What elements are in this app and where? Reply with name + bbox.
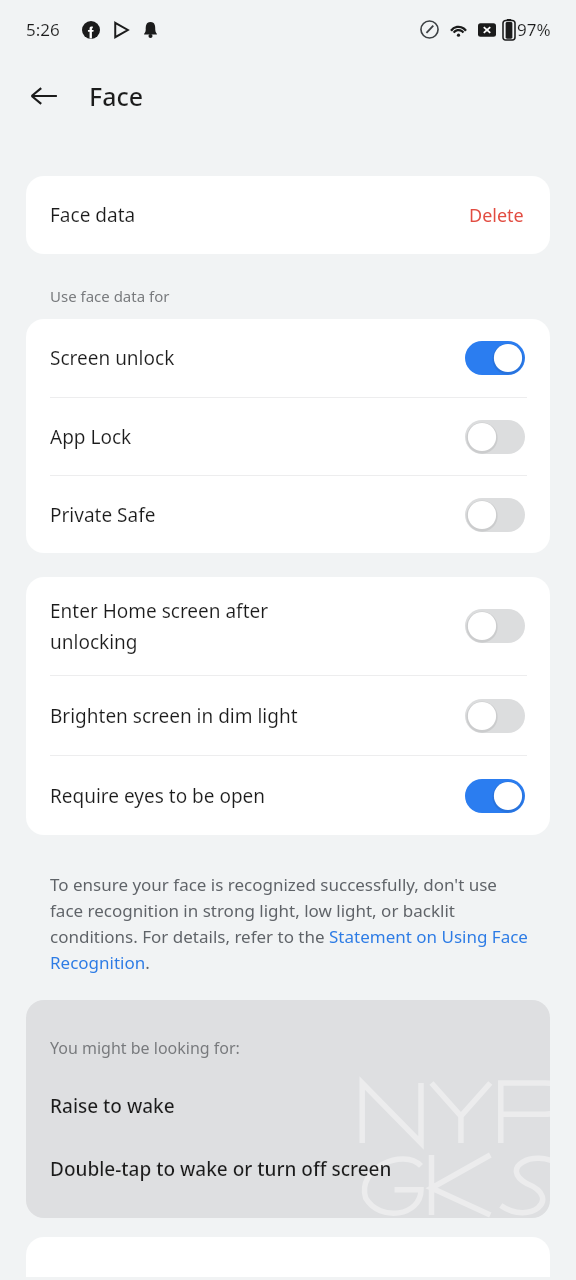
staticText: Brighten screen in dim light: [50, 703, 457, 729]
staticText: Delete: [469, 203, 524, 228]
button[interactable]: Screen unlock: [26, 319, 550, 397]
button[interactable]: On: [465, 779, 525, 813]
staticText: Raise to wake: [50, 1093, 175, 1119]
staticText: Face: [89, 79, 144, 113]
button[interactable]: Private Safe: [26, 476, 550, 553]
button[interactable]: Off: [465, 699, 525, 733]
button[interactable]: Double-tap to wake or turn off screen: [26, 1150, 550, 1188]
staticText: Enter Home screen after unlocking: [50, 598, 457, 655]
staticText: 5:26: [26, 18, 60, 41]
staticText: App Lock: [50, 424, 457, 450]
staticText: Require eyes to be open: [50, 783, 457, 809]
button[interactable]: App Lock: [26, 398, 550, 475]
button[interactable]: Off: [465, 609, 525, 643]
button[interactable]: Require eyes to be open: [26, 756, 550, 835]
staticText: 97%: [517, 18, 551, 41]
staticText: Use face data for: [50, 286, 170, 306]
staticText: Double-tap to wake or turn off screen: [50, 1156, 392, 1182]
staticText: Private Safe: [50, 502, 457, 528]
button[interactable]: Off: [465, 498, 525, 532]
button[interactable]: Back: [18, 70, 70, 122]
button[interactable]: Brighten screen in dim light: [26, 676, 550, 755]
staticText: You might be looking for:: [50, 1037, 240, 1059]
button[interactable]: On: [465, 341, 525, 375]
staticText: Face data: [50, 202, 136, 228]
staticText: Screen unlock: [50, 345, 457, 371]
staticText: To ensure your face is recognized succes…: [50, 873, 534, 974]
button[interactable]: Off: [465, 420, 525, 454]
button[interactable]: Face data: [26, 176, 550, 254]
button[interactable]: Enter Home screen after unlocking: [26, 577, 550, 675]
button[interactable]: Raise to wake: [26, 1087, 550, 1125]
